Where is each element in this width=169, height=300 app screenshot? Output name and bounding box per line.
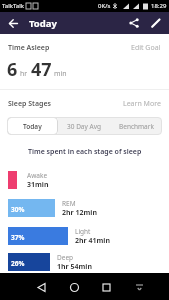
staticText: TalkTalk [2, 2, 24, 10]
staticText: Today [29, 17, 57, 30]
staticText: Learn More [123, 99, 161, 109]
staticText: Sleep Stages [8, 99, 51, 109]
button[interactable] [127, 16, 141, 30]
staticText: REM [62, 199, 76, 208]
staticText: 37% [11, 233, 25, 242]
button[interactable] [66, 279, 82, 295]
staticText: Benchmark [119, 122, 154, 131]
staticText: 6 [7, 57, 18, 82]
staticText: hr [20, 69, 28, 79]
staticText: 31min [27, 180, 49, 189]
button[interactable]: 26% [8, 253, 169, 271]
staticText: Deep [57, 253, 74, 262]
staticText: min [54, 69, 67, 79]
button[interactable] [6, 16, 20, 30]
staticText: 26% [11, 259, 25, 268]
staticText: 2hr 12min [62, 208, 97, 217]
staticText: Time spent in each stage of sleep [28, 147, 142, 157]
staticText: 47 [31, 57, 52, 82]
button[interactable]: 30 Day Avg [58, 117, 110, 135]
staticText: Light [75, 227, 91, 236]
button[interactable]: Learn More [123, 99, 161, 109]
button[interactable] [149, 16, 163, 30]
button[interactable] [98, 279, 114, 295]
button[interactable]: Awake [8, 171, 169, 189]
button[interactable]: Edit Goal [131, 43, 161, 53]
staticText: 18:29 [151, 2, 167, 10]
button[interactable]: Today [7, 117, 58, 135]
button[interactable] [33, 279, 49, 295]
button[interactable] [131, 279, 147, 295]
staticText: Time Asleep [8, 43, 50, 53]
button[interactable]: Benchmark [110, 117, 162, 135]
staticText: Edit Goal [131, 43, 161, 53]
button[interactable]: 30% [8, 199, 169, 217]
staticText: Today [23, 122, 42, 131]
staticText: Awake [27, 171, 48, 180]
staticText: 30% [11, 205, 25, 214]
button[interactable]: 37% [8, 227, 169, 245]
staticText: 0K/s [98, 2, 111, 10]
staticText: 30 Day Avg [67, 122, 101, 131]
staticText: 2hr 41min [75, 236, 110, 245]
staticText: 1hr 54min [57, 262, 92, 271]
